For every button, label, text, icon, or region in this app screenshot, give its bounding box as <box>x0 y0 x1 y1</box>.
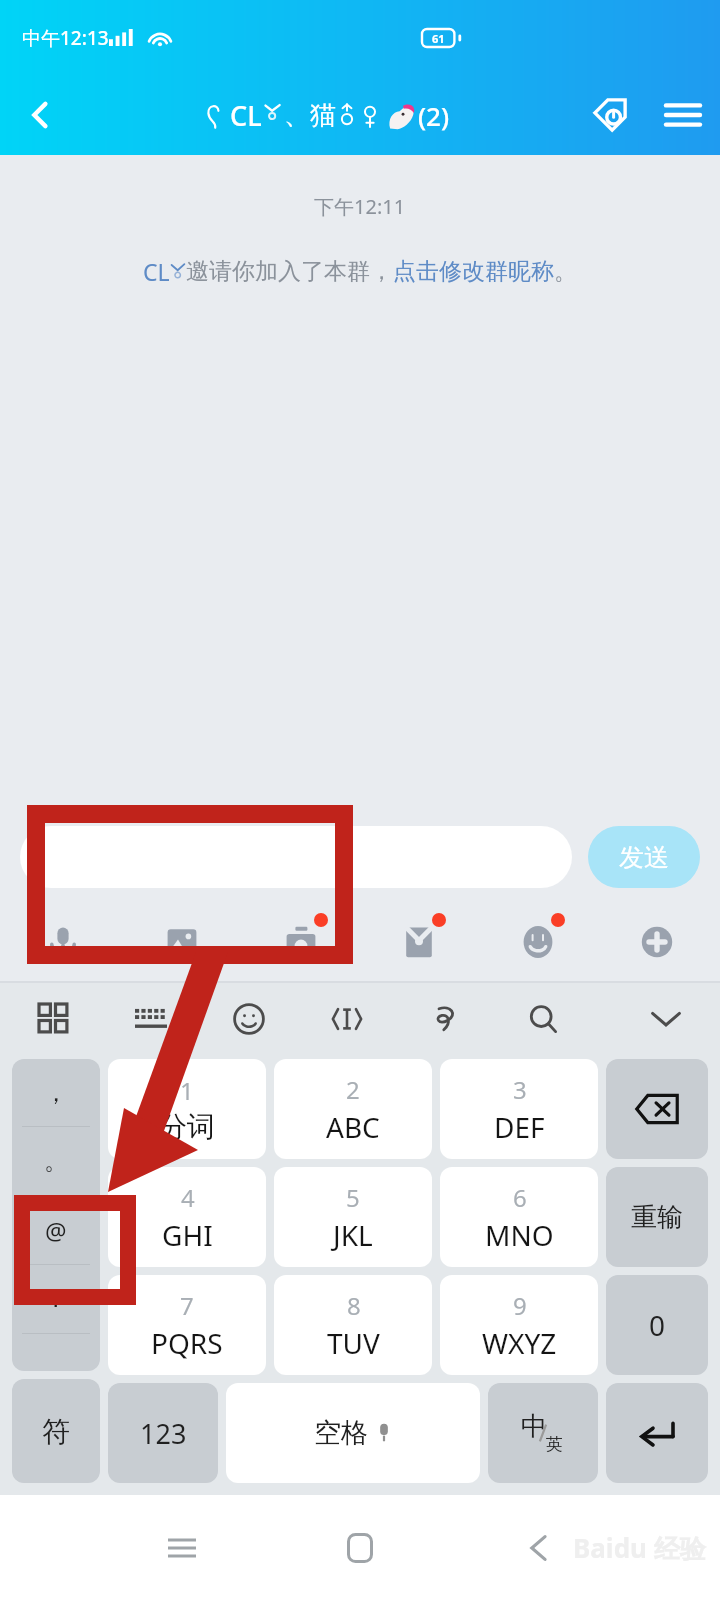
button[interactable]: 。 <box>12 1127 100 1195</box>
staticText: @ <box>45 1214 67 1247</box>
button[interactable]: 1 <box>108 1059 266 1159</box>
staticText: 8 <box>347 1289 361 1322</box>
staticText: 。 <box>554 257 577 286</box>
staticText: 中午12:13 <box>22 25 109 51</box>
staticText: 、猫 <box>284 99 336 132</box>
staticText: 分词 <box>159 1109 215 1144</box>
button[interactable]: ， <box>12 1059 100 1126</box>
button[interactable]: 0 <box>606 1275 708 1375</box>
button[interactable]: 5 <box>274 1167 432 1267</box>
button[interactable]: 键盘 <box>123 991 179 1047</box>
staticText: 6 <box>513 1181 527 1214</box>
button[interactable] <box>20 826 572 888</box>
button[interactable]: 最近任务 <box>142 1508 222 1588</box>
button[interactable]: 符 <box>12 1379 100 1483</box>
staticText: MNO <box>485 1216 554 1254</box>
staticText: 4 <box>181 1181 195 1214</box>
button[interactable]: 表情 <box>221 991 277 1047</box>
staticText: 61 <box>432 31 445 46</box>
button[interactable]: 相机 <box>264 907 338 977</box>
button[interactable]: 光标 <box>319 991 375 1047</box>
staticText: GHI <box>162 1216 213 1254</box>
staticText: 发送 <box>619 842 669 873</box>
staticText: 邀请你加入了本群， <box>186 257 393 286</box>
staticText: 5 <box>346 1181 360 1214</box>
button[interactable]: @ <box>12 1196 100 1264</box>
button[interactable]: 发送 <box>588 826 700 888</box>
staticText: 下午12:11 <box>314 193 406 220</box>
staticText: 符 <box>42 1414 70 1449</box>
staticText: 中 <box>521 1410 547 1443</box>
button[interactable]: 8 <box>274 1275 432 1375</box>
staticText: ？ <box>44 1284 68 1314</box>
staticText: 123 <box>140 1415 187 1452</box>
staticText: 1 <box>180 1074 194 1107</box>
button[interactable]: 搜索 <box>515 991 571 1047</box>
staticText: DEF <box>494 1108 545 1146</box>
button[interactable]: 返回 <box>0 75 80 155</box>
staticText: TUV <box>327 1324 380 1362</box>
button[interactable] <box>12 1334 100 1371</box>
button[interactable]: 回车 <box>606 1383 708 1483</box>
button[interactable]: 更多 <box>620 907 694 977</box>
staticText: 0 <box>649 1306 666 1344</box>
button[interactable]: 表情 <box>501 907 575 977</box>
button[interactable]: 群名片 <box>574 75 646 155</box>
staticText: 3 <box>513 1073 527 1106</box>
staticText: 7 <box>180 1289 194 1322</box>
button[interactable]: 收起键盘 <box>638 991 694 1047</box>
staticText: 9 <box>513 1289 527 1322</box>
staticText: CL <box>143 256 170 287</box>
button[interactable]: 空格 <box>226 1383 480 1483</box>
button[interactable]: ？ <box>12 1265 100 1333</box>
staticText: WXYZ <box>482 1324 557 1362</box>
button[interactable]: 123 <box>108 1383 218 1483</box>
staticText: ， <box>44 1078 68 1108</box>
button[interactable]: 返回 <box>498 1508 578 1588</box>
button[interactable]: 面板 <box>26 991 82 1047</box>
button[interactable]: 删除 <box>606 1059 708 1159</box>
staticText: 空格 <box>314 1416 368 1450</box>
staticText: JKL <box>333 1216 373 1254</box>
staticText: 重输 <box>631 1201 683 1234</box>
button[interactable]: 重输 <box>606 1167 708 1267</box>
button[interactable]: 2 <box>274 1059 432 1159</box>
button[interactable]: 语音 <box>26 907 100 977</box>
button[interactable]: CL <box>80 75 574 155</box>
button[interactable]: 4 <box>108 1167 266 1267</box>
staticText: CL <box>230 97 262 134</box>
button[interactable]: 主屏幕 <box>320 1508 400 1588</box>
button[interactable]: 点击修改群昵称 <box>393 257 554 286</box>
staticText: 英 <box>546 1434 563 1455</box>
button[interactable]: 3 <box>440 1059 598 1159</box>
staticText: 。 <box>44 1146 68 1176</box>
button[interactable]: 9 <box>440 1275 598 1375</box>
staticText: 点击修改群昵称 <box>393 257 554 286</box>
button[interactable]: 中 <box>488 1383 598 1483</box>
staticText: PQRS <box>151 1324 223 1362</box>
button[interactable]: 7 <box>108 1275 266 1375</box>
button[interactable]: 菜单 <box>646 75 720 155</box>
button[interactable]: 剪贴板 <box>417 991 473 1047</box>
staticText: 2 <box>346 1073 360 1106</box>
button[interactable]: 红包 <box>382 907 456 977</box>
button[interactable]: 6 <box>440 1167 598 1267</box>
staticText: ABC <box>326 1108 380 1146</box>
staticText: (2) <box>418 98 450 133</box>
staticText: Baidu 经验 <box>573 1530 706 1566</box>
button[interactable]: 图片 <box>145 907 219 977</box>
